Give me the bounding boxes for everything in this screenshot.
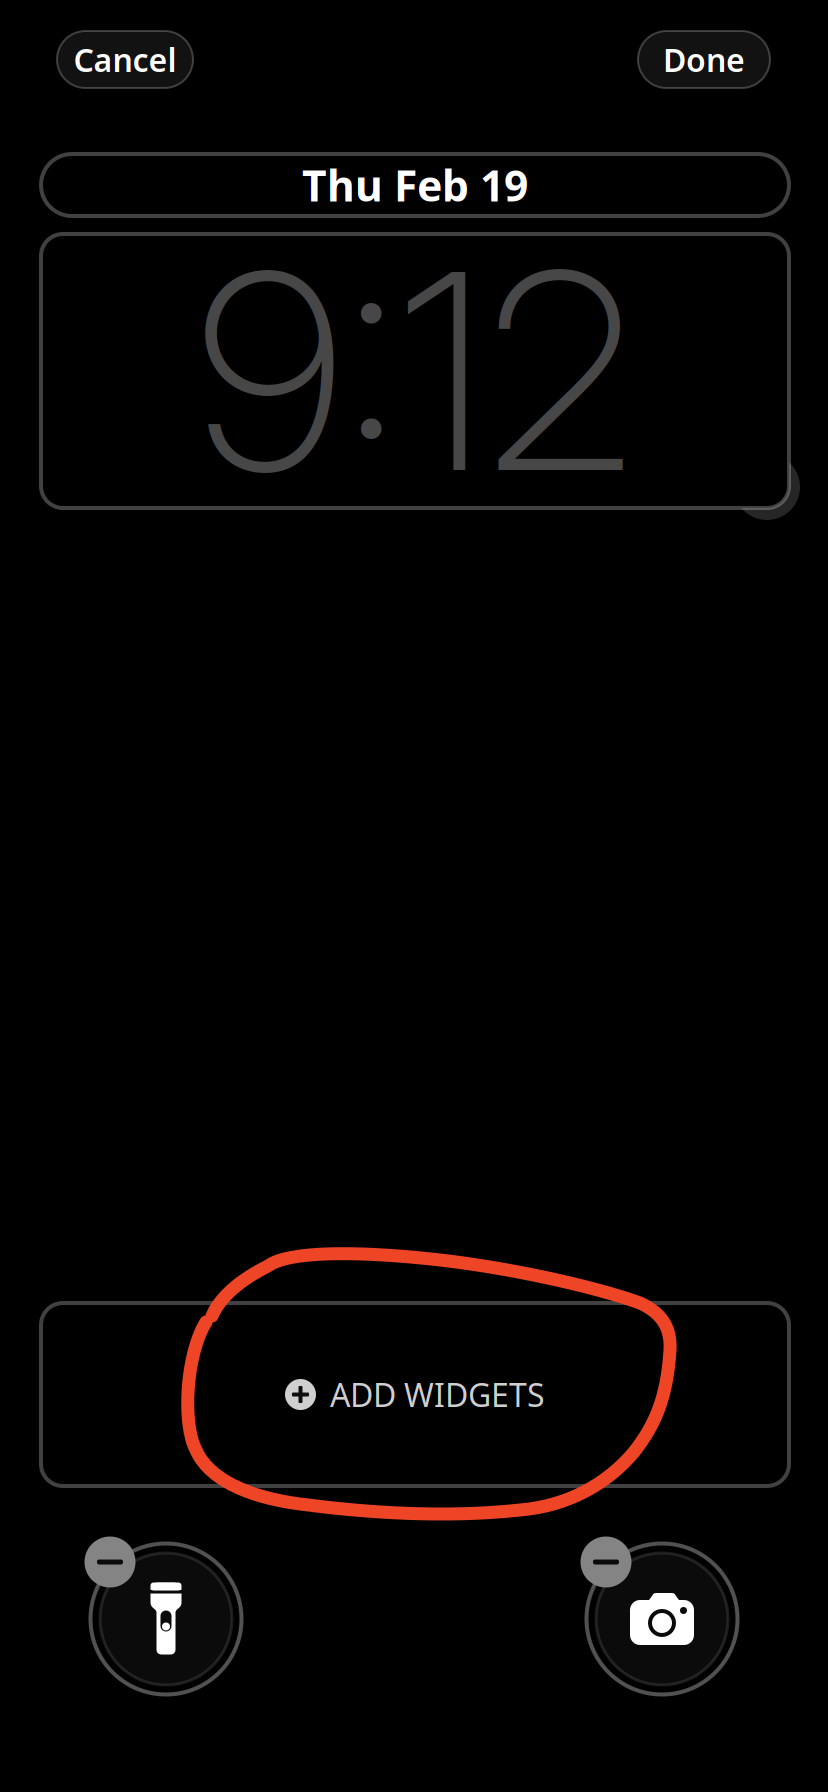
button[interactable]: Flashlight <box>88 1541 244 1697</box>
button[interactable]: Thu Feb 19 <box>41 154 789 216</box>
button[interactable]: Remove Flashlight <box>84 1536 135 1587</box>
staticText: Cancel <box>73 38 176 81</box>
button[interactable]: Cancel <box>57 31 193 88</box>
button[interactable]: Camera <box>584 1541 740 1697</box>
button[interactable]: Edit clock style <box>734 454 800 520</box>
staticText: Done <box>663 38 745 81</box>
staticText: Thu Feb 19 <box>302 157 528 213</box>
staticText: ADD WIDGETS <box>330 1373 545 1416</box>
button[interactable]: Done <box>638 31 770 88</box>
button[interactable]: ADD WIDGETS <box>41 1303 789 1486</box>
button[interactable]: Remove Camera <box>580 1536 631 1587</box>
button[interactable]: 9:12 <box>41 234 789 508</box>
staticText: 9:12 <box>195 206 634 535</box>
